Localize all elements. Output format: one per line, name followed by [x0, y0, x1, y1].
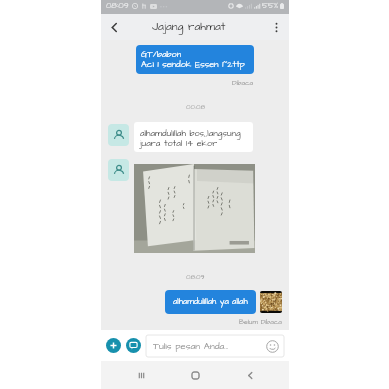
button[interactable]: alhamdulillah ya allah: [165, 290, 256, 314]
button[interactable]: Sticker: [126, 338, 141, 353]
button[interactable]: Photo: [260, 291, 282, 313]
staticText: 08:09: [186, 272, 205, 282]
staticText: Jajang rahmat: [152, 19, 226, 35]
button[interactable]: GT/babon Aci 1 sendok Essen 1~2ttp: [136, 45, 254, 74]
button[interactable]: Recents: [126, 361, 156, 389]
button[interactable]: Back: [235, 361, 265, 389]
button[interactable]: More options: [263, 14, 289, 40]
staticText: 00:08: [186, 102, 205, 112]
button[interactable]: Home: [180, 361, 210, 389]
staticText: Dibaca: [232, 78, 254, 88]
button[interactable]: Tulis pesan Anda...: [146, 335, 284, 357]
button[interactable]: alhamdulillah bos,,langsung juara total …: [134, 122, 253, 152]
staticText: GT/babon Aci 1 sendok Essen 1~2ttp: [141, 48, 245, 71]
button[interactable]: Attach: [106, 338, 121, 353]
staticText: 55%: [262, 0, 279, 12]
staticText: Belum Dibaca: [239, 317, 282, 327]
staticText: alhamdulillah bos,,langsung juara total …: [140, 127, 241, 150]
button[interactable]: Contact avatar: [108, 124, 129, 146]
staticText: alhamdulillah ya allah: [173, 296, 248, 308]
staticText: 08:09: [106, 0, 129, 12]
staticText: Tulis pesan Anda...: [153, 340, 229, 353]
button[interactable]: Photo message: [134, 164, 255, 253]
button[interactable]: Back: [101, 14, 127, 40]
button[interactable]: Contact avatar: [108, 159, 129, 181]
